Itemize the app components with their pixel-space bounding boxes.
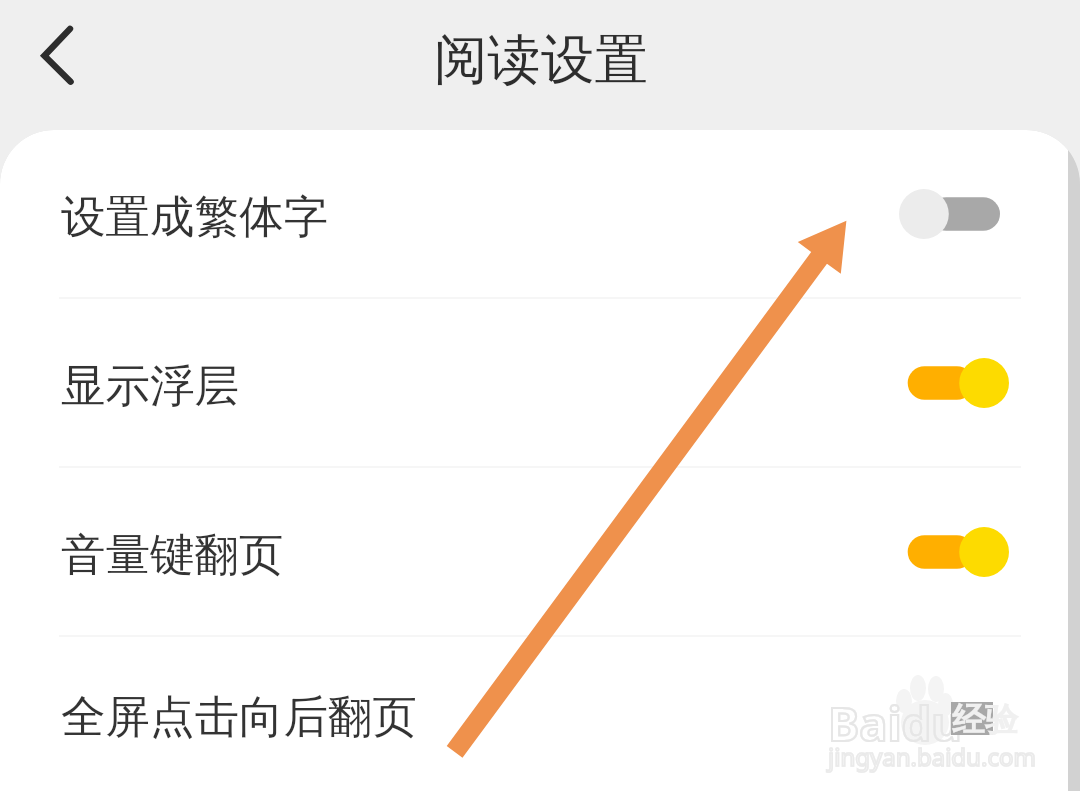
staticText: 音量键翻页 <box>61 527 284 583</box>
staticText: jingyan.baidu.com <box>828 740 1036 773</box>
staticText: 全屏点击向后翻页 <box>61 689 417 745</box>
staticText: 阅读设置 <box>434 26 648 93</box>
button[interactable]: 设置成繁体字 <box>0 130 1068 297</box>
button[interactable]: 显示浮层 <box>0 299 1068 466</box>
button[interactable]: 音量键翻页 <box>0 468 1068 635</box>
button[interactable]: 设置成繁体字 关 <box>899 186 1009 242</box>
staticText: Baidu <box>828 691 962 755</box>
button[interactable]: 音量键翻页 开 <box>899 524 1009 580</box>
button[interactable]: Back <box>14 0 106 112</box>
staticText: 显示浮层 <box>61 358 239 414</box>
staticText: 经验 <box>952 699 1018 741</box>
staticText: 设置成繁体字 <box>61 189 328 245</box>
button[interactable]: 全屏点击向后翻页 <box>0 637 1068 791</box>
button[interactable]: 显示浮层 开 <box>899 355 1009 411</box>
